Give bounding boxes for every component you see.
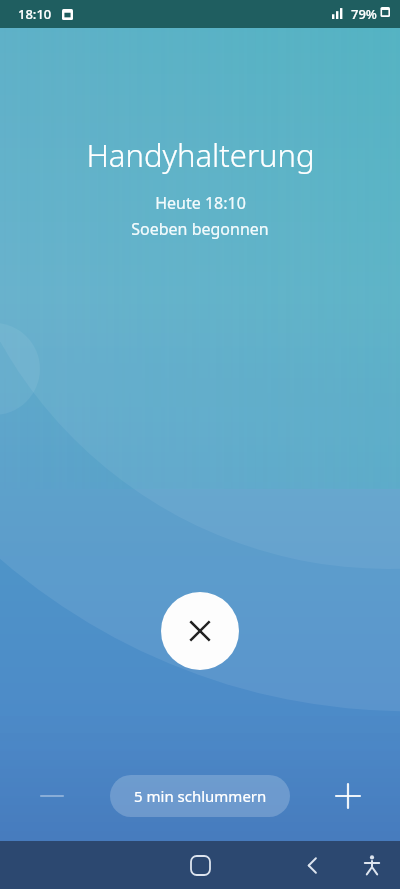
button[interactable]: Bedienungshilfen [348,841,396,889]
button[interactable]: Startbildschirm [176,841,224,889]
button[interactable]: Schlummerzeit erhöhen [324,774,372,818]
staticText: Soeben begonnen [131,218,269,240]
button[interactable]: Alarm beenden [161,592,239,670]
staticText: Handyhalterung [86,134,315,176]
staticText: 18:10 [18,5,52,23]
button[interactable]: Schlummerzeit verringern [28,774,76,818]
button[interactable]: 5 min schlummern [110,775,290,817]
button[interactable]: Zurück [288,841,336,889]
staticText: 5 min schlummern [134,786,267,806]
staticText: 79% [351,5,377,23]
staticText: Heute 18:10 [155,192,246,214]
